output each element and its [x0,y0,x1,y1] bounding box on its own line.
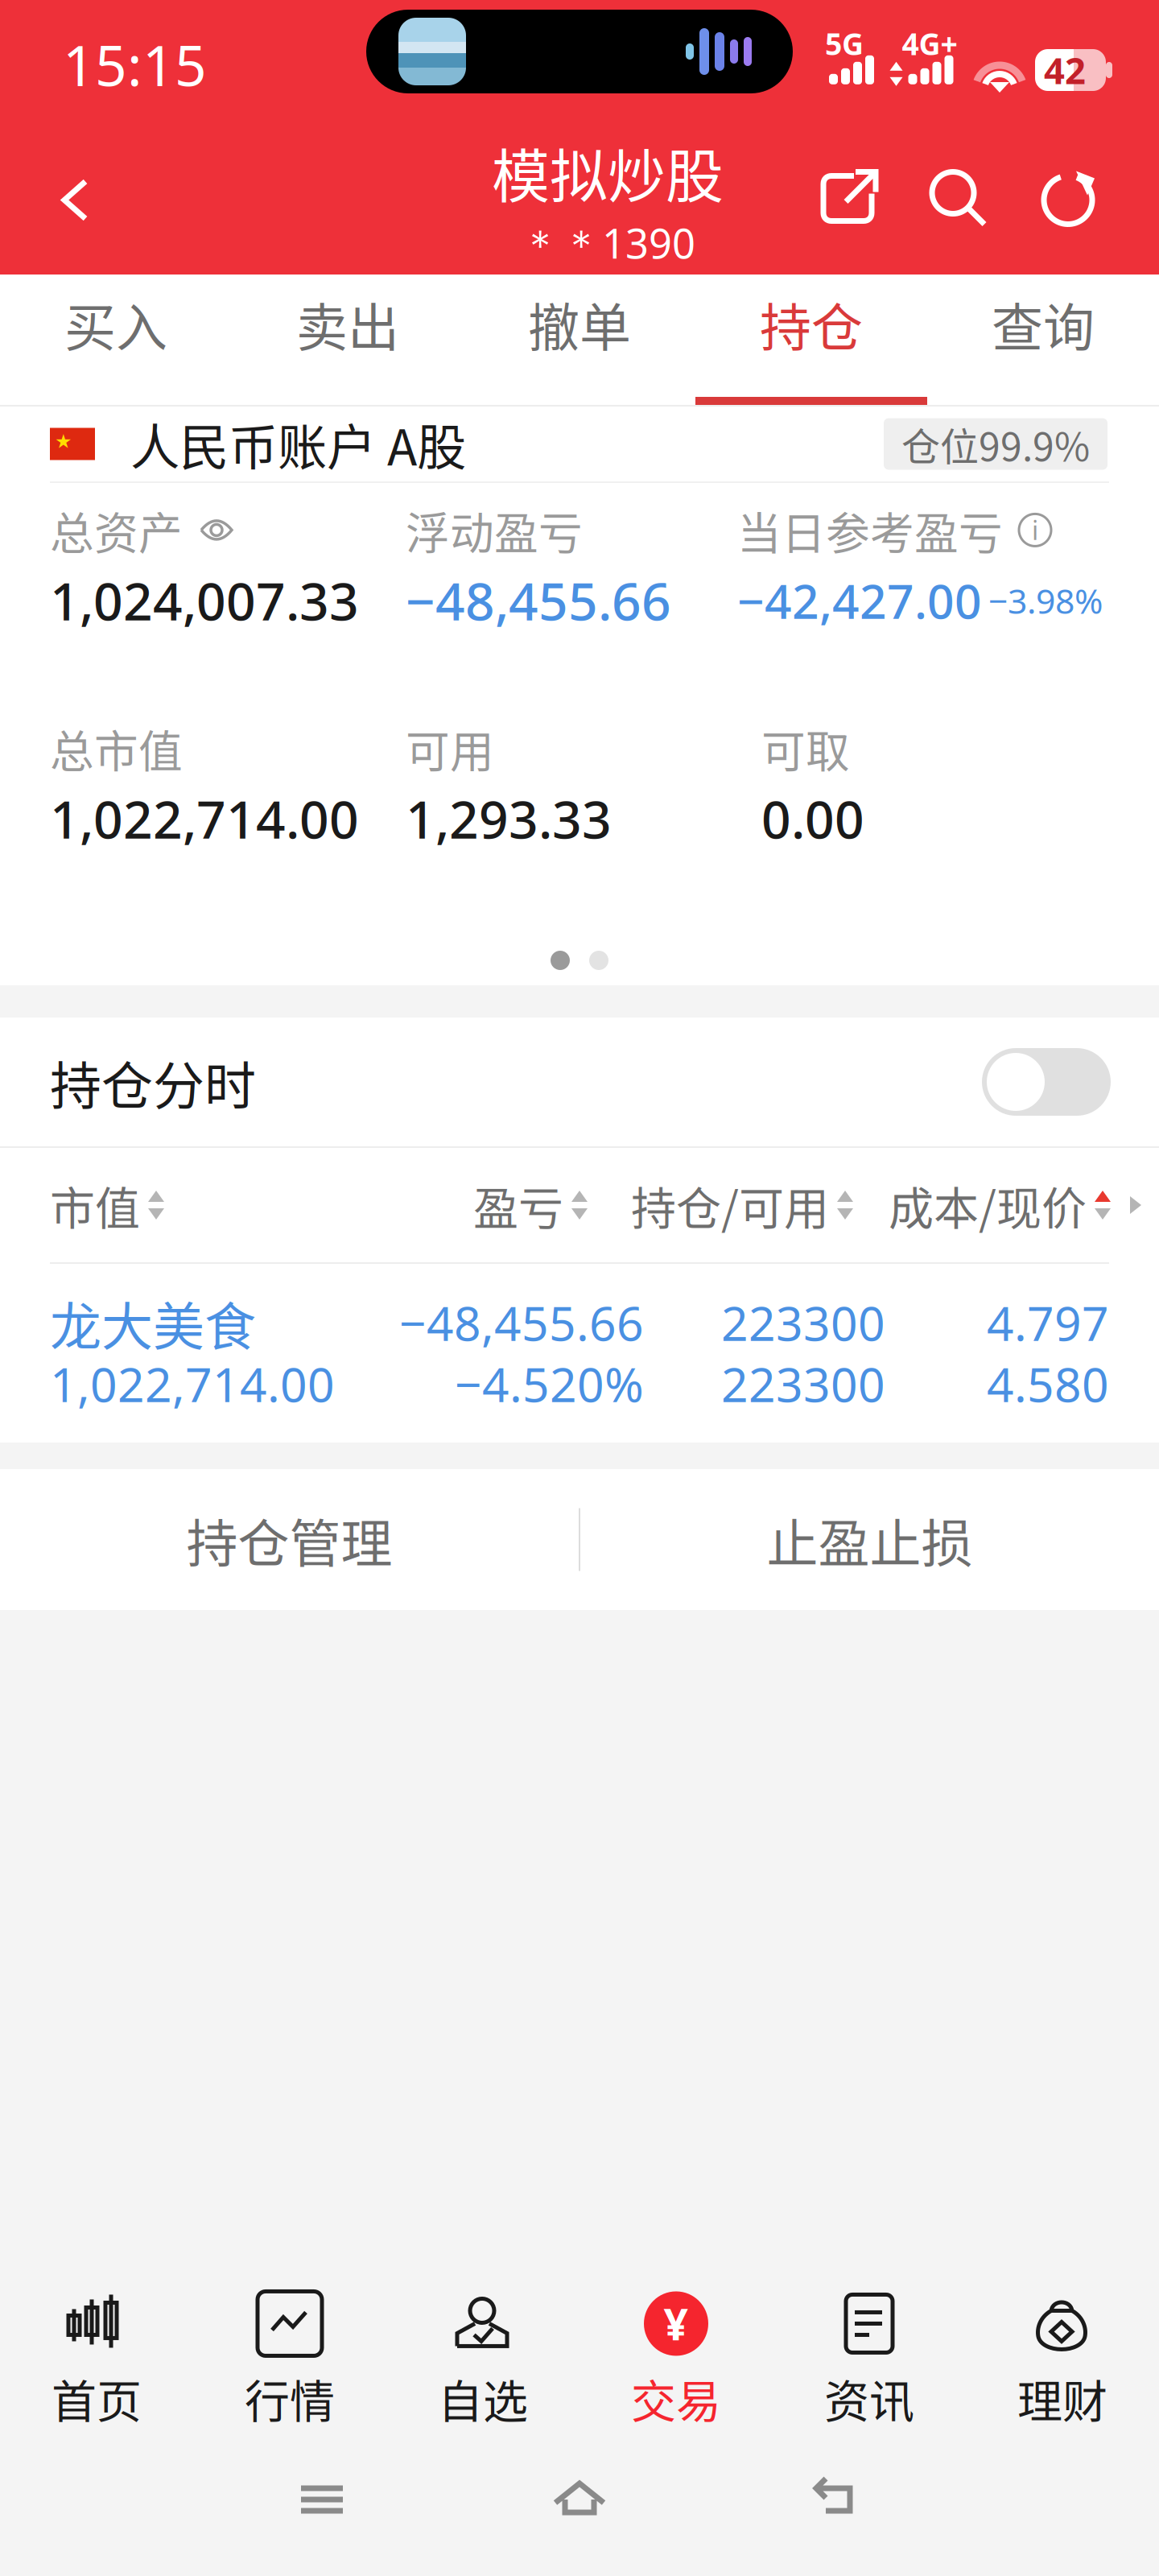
button[interactable]: Search [904,148,1013,249]
button[interactable]: 持仓分时 [0,1018,1159,1146]
staticText: 15:15 [63,27,207,102]
staticText: 1,022,714.00 [50,784,359,853]
staticText: 理财 [1017,2365,1107,2431]
button[interactable]: Back [805,2467,869,2532]
staticText: 总市值 [50,716,183,780]
staticText: 当日参考盈亏 [737,498,1003,562]
staticText: 总资产 [50,498,183,562]
staticText: −3.98% [988,578,1103,623]
button[interactable]: 查询 [927,275,1159,405]
staticText: 持仓分时 [50,1045,256,1119]
staticText: 买入 [64,286,167,361]
staticText: 撤单 [528,286,631,361]
staticText: 交易 [631,2365,721,2431]
staticText: 1,293.33 [406,784,612,853]
staticText: 持仓 [760,286,863,361]
button[interactable]: 自选 [386,2270,579,2423]
staticText: 可用 [406,716,494,780]
staticText: 行情 [245,2365,335,2431]
staticText: 0.00 [761,784,864,853]
staticText: 仓位99.9% [901,416,1090,472]
button[interactable]: Home [547,2467,612,2532]
staticText: −48,455.66 [406,566,671,635]
staticText: −48,455.66 [399,1291,644,1354]
staticText: 模拟炒股 [492,130,724,214]
staticText: 成本/现价 [889,1172,1087,1238]
staticText: 持仓/可用 [631,1172,829,1238]
staticText: 5G [825,24,864,63]
button[interactable]: ¥ [579,2270,773,2423]
staticText: 可取 [761,716,850,780]
staticText: 龙大美食 [50,1285,256,1360]
staticText: −42,427.00 [737,569,982,632]
staticText: 止盈止损 [767,1502,973,1577]
button[interactable]: 止盈止损 [580,1469,1159,1610]
staticText: 4.580 [987,1352,1109,1415]
staticText: ★ [55,430,72,452]
button[interactable]: Refresh [1013,148,1123,249]
button[interactable]: Back [40,162,113,235]
button[interactable]: 龙大美食 [0,1264,1159,1443]
staticText: 盈亏 [473,1172,563,1238]
staticText: 42 [1044,46,1086,94]
staticText: 资讯 [824,2365,914,2431]
staticText: 223300 [721,1291,885,1354]
button[interactable]: 持仓 [695,275,927,405]
button[interactable]: Share [794,148,904,249]
staticText: 223300 [721,1352,885,1415]
staticText: ¥ [664,2295,689,2352]
staticText: 4G+ [902,24,957,63]
staticText: 自选 [438,2365,528,2431]
staticText: 卖出 [296,286,399,361]
staticText: 人民币账户 A股 [130,408,466,480]
staticText: 1,022,714.00 [50,1352,335,1415]
staticText: 浮动盈亏 [406,498,583,562]
staticText: 首页 [52,2365,142,2431]
staticText: 4.797 [987,1291,1109,1354]
staticText: 市值 [50,1172,140,1238]
button[interactable]: 行情 [193,2270,386,2423]
button[interactable]: 首页 [0,2270,193,2423]
staticText: i [1032,513,1038,547]
staticText: ＊＊1390 [520,216,695,270]
button[interactable]: 持仓管理 [0,1469,579,1610]
button[interactable]: 撤单 [464,275,695,405]
staticText: 查询 [992,286,1095,361]
button[interactable]: 卖出 [232,275,464,405]
staticText: 持仓管理 [186,1502,392,1577]
button[interactable]: 资讯 [773,2270,966,2423]
staticText: 1,024,007.33 [50,566,359,635]
button[interactable]: 买入 [0,275,232,405]
staticText: −4.520% [455,1352,644,1415]
button[interactable]: 理财 [966,2270,1159,2423]
button[interactable]: Recent apps [290,2467,354,2532]
